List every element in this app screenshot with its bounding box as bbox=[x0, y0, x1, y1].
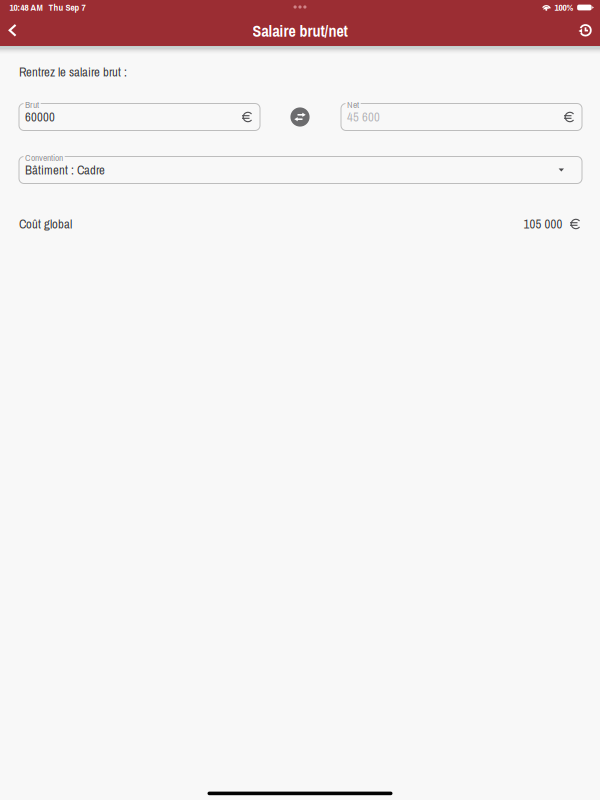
staticText: Brut bbox=[25, 98, 39, 111]
staticText: Convention bbox=[25, 151, 63, 164]
staticText: Coût global bbox=[19, 215, 72, 233]
staticText: Bâtiment : Cadre bbox=[25, 161, 105, 179]
staticText: 45 600 bbox=[347, 108, 380, 126]
staticText: Net bbox=[347, 98, 359, 111]
button[interactable]: Bâtiment : Cadre bbox=[19, 152, 582, 183]
button[interactable]: Back bbox=[0, 15, 28, 45]
staticText: 105 000 bbox=[523, 215, 562, 233]
staticText: 100% bbox=[554, 1, 573, 14]
staticText: Salaire brut/net bbox=[252, 20, 347, 42]
button[interactable]: History bbox=[570, 15, 600, 45]
staticText: 10:48 AM bbox=[9, 1, 42, 14]
staticText: Rentrez le salaire brut : bbox=[19, 63, 127, 81]
staticText: 60000 bbox=[25, 108, 55, 126]
button[interactable]: Swap brut and net bbox=[285, 102, 315, 132]
staticText: Thu Sep 7 bbox=[48, 1, 85, 14]
